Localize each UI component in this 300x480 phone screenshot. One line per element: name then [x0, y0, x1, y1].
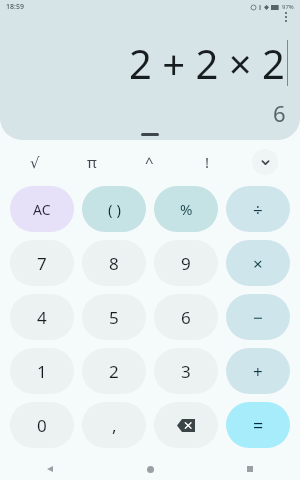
button[interactable]: ×: [226, 240, 290, 286]
staticText: 18:59: [6, 2, 24, 12]
button[interactable]: 0: [10, 402, 74, 448]
button[interactable]: ,: [82, 402, 146, 448]
staticText: ÷: [253, 198, 263, 221]
staticText: 6: [273, 98, 286, 128]
button[interactable]: √: [6, 144, 63, 180]
button[interactable]: !: [178, 144, 236, 180]
button[interactable]: 7: [10, 240, 74, 286]
staticText: 2 + 2 × 2: [129, 36, 285, 90]
button[interactable]: 6: [154, 294, 218, 340]
button[interactable]: 5: [82, 294, 146, 340]
staticText: 4: [37, 306, 47, 329]
staticText: π: [87, 152, 97, 172]
button[interactable]: ÷: [226, 186, 290, 232]
staticText: +: [253, 360, 263, 383]
button[interactable]: 8: [82, 240, 146, 286]
button[interactable]: Recent apps: [200, 458, 300, 480]
staticText: 5: [109, 306, 119, 329]
staticText: =: [253, 413, 264, 438]
button[interactable]: ( ): [82, 186, 146, 232]
staticText: 8: [109, 252, 119, 275]
staticText: ×: [253, 252, 263, 275]
staticText: !: [205, 152, 210, 172]
button[interactable]: Backspace: [154, 402, 218, 448]
button[interactable]: +: [226, 348, 290, 394]
staticText: ,: [112, 414, 117, 437]
staticText: 97%: [282, 3, 294, 11]
staticText: %: [180, 199, 193, 219]
button[interactable]: Home: [100, 458, 200, 480]
staticText: ( ): [108, 199, 121, 219]
button[interactable]: π: [63, 144, 120, 180]
staticText: 7: [37, 252, 47, 275]
staticText: 2: [109, 360, 119, 383]
staticText: 6: [181, 306, 191, 329]
staticText: 0: [37, 414, 47, 437]
button[interactable]: Expand functions: [252, 149, 278, 175]
staticText: √: [30, 154, 40, 171]
staticText: AC: [33, 200, 51, 219]
button[interactable]: 9: [154, 240, 218, 286]
button[interactable]: 1: [10, 348, 74, 394]
staticText: 3: [181, 360, 191, 383]
button[interactable]: 3: [154, 348, 218, 394]
button[interactable]: AC: [10, 186, 74, 232]
staticText: ^: [145, 152, 154, 172]
staticText: 1: [37, 360, 47, 383]
button[interactable]: %: [154, 186, 218, 232]
staticText: 9: [181, 252, 191, 275]
button[interactable]: ^: [120, 144, 178, 180]
staticText: −: [253, 306, 263, 329]
button[interactable]: Back: [0, 458, 100, 480]
button[interactable]: More options: [281, 12, 291, 22]
button[interactable]: =: [226, 402, 290, 448]
button[interactable]: −: [226, 294, 290, 340]
button[interactable]: 4: [10, 294, 74, 340]
button[interactable]: 2: [82, 348, 146, 394]
